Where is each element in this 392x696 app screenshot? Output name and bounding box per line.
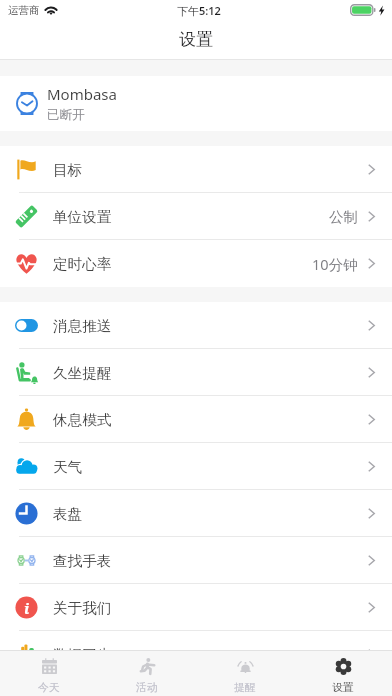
- button[interactable]: 定时心率: [0, 240, 392, 287]
- staticText: 关于我们: [53, 599, 112, 617]
- staticText: 今天: [38, 681, 60, 695]
- staticText: 运营商: [8, 4, 40, 17]
- button[interactable]: Reminders: [196, 651, 294, 696]
- button[interactable]: i: [0, 584, 392, 631]
- button[interactable]: 久坐提醒: [0, 349, 392, 396]
- staticText: 查找手表: [53, 552, 112, 570]
- button[interactable]: 天气: [0, 443, 392, 490]
- button[interactable]: 表盘: [0, 490, 392, 537]
- staticText: 数据同步: [53, 646, 112, 650]
- staticText: 已断开: [47, 107, 85, 123]
- staticText: 下午5:12: [177, 3, 221, 18]
- staticText: 设置: [179, 29, 213, 50]
- button[interactable]: 查找手表: [0, 537, 392, 584]
- staticText: 休息模式: [53, 411, 112, 429]
- button[interactable]: Mombasa: [0, 76, 392, 131]
- staticText: 表盘: [53, 505, 83, 523]
- button[interactable]: Activity: [98, 651, 196, 696]
- button[interactable]: 休息模式: [0, 396, 392, 443]
- staticText: 天气: [53, 458, 83, 476]
- staticText: 消息推送: [53, 317, 112, 335]
- staticText: i: [24, 598, 30, 618]
- staticText: 10分钟: [312, 254, 358, 274]
- button[interactable]: 目标: [0, 146, 392, 193]
- staticText: 久坐提醒: [53, 364, 112, 382]
- staticText: 活动: [136, 681, 158, 695]
- button[interactable]: 单位设置: [0, 193, 392, 240]
- button[interactable]: 数据同步: [0, 631, 392, 650]
- staticText: Mombasa: [47, 84, 117, 104]
- button[interactable]: Settings: [294, 651, 392, 696]
- staticText: 定时心率: [53, 255, 112, 273]
- staticText: 目标: [53, 161, 83, 179]
- staticText: 提醒: [234, 681, 256, 695]
- button[interactable]: Today: [0, 651, 98, 696]
- staticText: 公制: [329, 208, 358, 226]
- button[interactable]: 消息推送: [0, 302, 392, 349]
- staticText: 设置: [332, 681, 354, 695]
- staticText: 单位设置: [53, 208, 112, 226]
